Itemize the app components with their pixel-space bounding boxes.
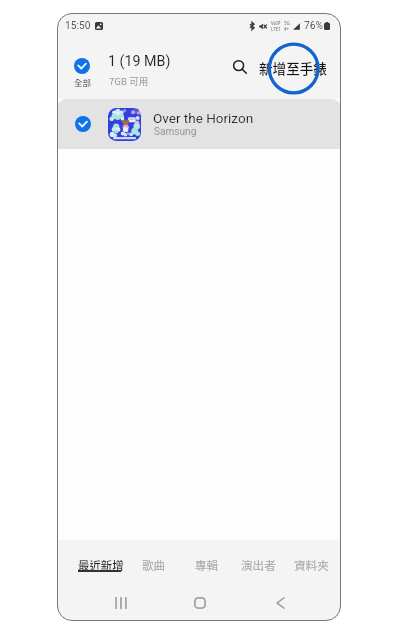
button[interactable]: 新增至手錶 bbox=[259, 58, 327, 78]
staticText: 全部 bbox=[74, 76, 92, 88]
staticText: 1 (19 MB) bbox=[108, 53, 171, 70]
staticText: Samsung bbox=[154, 126, 197, 138]
button[interactable]: 最近新增 bbox=[74, 551, 125, 577]
staticText: VoIP bbox=[271, 20, 281, 26]
button[interactable]: 專輯 bbox=[191, 553, 223, 578]
staticText: 專輯 bbox=[195, 557, 219, 574]
staticText: 4+ bbox=[284, 26, 290, 32]
button[interactable]: Over the Horizon bbox=[57, 99, 341, 149]
button[interactable]: 演出者 bbox=[237, 553, 280, 578]
staticText: 最近新增 bbox=[78, 557, 124, 574]
button[interactable]: Back bbox=[264, 587, 296, 619]
staticText: 資料夾 bbox=[294, 557, 329, 574]
button[interactable]: Select all bbox=[71, 55, 92, 76]
button[interactable]: 歌曲 bbox=[138, 553, 170, 578]
button[interactable]: Recent apps bbox=[105, 587, 137, 619]
staticText: 7GB 可用 bbox=[109, 74, 149, 88]
staticText: 5G bbox=[284, 20, 290, 26]
staticText: 15:50 bbox=[65, 20, 91, 32]
button[interactable]: 資料夾 bbox=[290, 553, 333, 578]
staticText: Over the Horizon bbox=[153, 110, 254, 126]
staticText: LTE1 bbox=[271, 26, 281, 32]
button[interactable]: Home bbox=[184, 587, 216, 619]
staticText: 歌曲 bbox=[142, 557, 166, 574]
staticText: 演出者 bbox=[241, 557, 276, 574]
button[interactable]: Search bbox=[229, 56, 251, 78]
staticText: 76% bbox=[304, 20, 323, 32]
staticText: 新增至手錶 bbox=[259, 58, 327, 78]
